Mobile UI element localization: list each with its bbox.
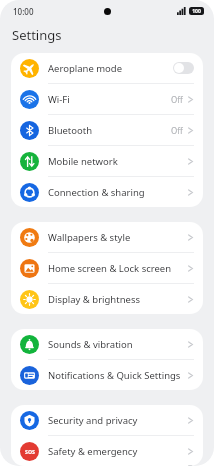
button[interactable]: Notifications & Quick Settings (11, 360, 203, 390)
staticText: Display & brightness (48, 293, 187, 306)
staticText: Connection & sharing (48, 186, 187, 199)
staticText: Mobile network (48, 155, 187, 168)
staticText: Wallpapers & style (48, 231, 187, 244)
button[interactable]: Wi-Fi (11, 84, 203, 114)
button[interactable]: Toggle aeroplane mode (173, 62, 194, 74)
staticText: Home screen & Lock screen (48, 262, 187, 275)
staticText: 10:00 (13, 6, 34, 17)
button[interactable]: Aeroplane mode (11, 53, 203, 83)
staticText: Notifications & Quick Settings (48, 369, 187, 382)
button[interactable]: Display & brightness (11, 284, 203, 314)
staticText: 100 (192, 8, 201, 15)
button[interactable]: Sounds & vibration (11, 329, 203, 359)
staticText: Sounds & vibration (48, 338, 187, 351)
staticText: Off (171, 94, 183, 105)
button[interactable]: Connection & sharing (11, 177, 203, 207)
button[interactable]: Security and privacy (11, 405, 203, 435)
button[interactable]: SOS (11, 436, 203, 466)
staticText: Security and privacy (48, 414, 187, 427)
staticText: Safety & emergency (48, 445, 187, 458)
button[interactable]: Bluetooth (11, 115, 203, 145)
staticText: SOS (25, 448, 35, 455)
button[interactable]: Wallpapers & style (11, 222, 203, 252)
staticText: Aeroplane mode (48, 62, 173, 75)
staticText: Bluetooth (48, 124, 171, 137)
button[interactable]: Mobile network (11, 146, 203, 176)
staticText: Off (171, 125, 183, 136)
staticText: Settings (12, 26, 62, 44)
button[interactable]: Home screen & Lock screen (11, 253, 203, 283)
staticText: Wi-Fi (48, 93, 171, 106)
